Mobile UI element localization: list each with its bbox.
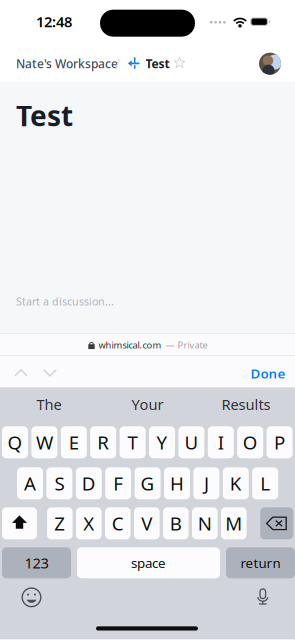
staticText: C: [112, 511, 124, 536]
button[interactable]: A: [17, 467, 43, 499]
staticText: Your: [131, 395, 163, 414]
staticText: U: [184, 430, 198, 455]
button[interactable]: return: [226, 547, 295, 578]
staticText: Nate's Workspace: [16, 56, 118, 72]
button[interactable]: Previous field: [8, 361, 34, 385]
staticText: H: [170, 471, 184, 496]
staticText: Private: [177, 339, 207, 351]
button[interactable]: Shift: [2, 507, 37, 539]
staticText: Results: [221, 395, 270, 414]
button[interactable]: E: [61, 426, 87, 458]
button[interactable]: H: [164, 467, 190, 499]
staticText: J: [204, 471, 209, 496]
staticText: Done: [250, 364, 285, 382]
button[interactable]: D: [76, 467, 102, 499]
staticText: A: [24, 471, 36, 496]
staticText: 12:48: [36, 12, 72, 31]
staticText: Y: [156, 430, 167, 455]
staticText: W: [36, 430, 53, 455]
staticText: M: [225, 511, 242, 536]
staticText: K: [230, 471, 242, 496]
button[interactable]: Your: [98, 387, 197, 421]
staticText: G: [141, 471, 155, 496]
staticText: S: [54, 471, 64, 496]
button[interactable]: P: [267, 426, 293, 458]
staticText: O: [243, 430, 258, 455]
button[interactable]: Results: [197, 387, 295, 421]
button[interactable]: Emoji: [18, 584, 44, 610]
staticText: 123: [24, 553, 48, 573]
staticText: V: [141, 511, 152, 536]
button[interactable]: X: [76, 507, 102, 539]
button[interactable]: Account: [259, 53, 281, 75]
staticText: Z: [54, 511, 65, 536]
button[interactable]: V: [134, 507, 160, 539]
staticText: T: [128, 430, 138, 455]
staticText: P: [274, 430, 285, 455]
button[interactable]: Test: [145, 51, 175, 77]
staticText: E: [69, 430, 79, 455]
staticText: N: [198, 511, 212, 536]
staticText: /: [114, 54, 119, 73]
staticText: space: [131, 554, 166, 572]
staticText: X: [83, 511, 94, 536]
button[interactable]: Nate's Workspace: [16, 51, 124, 77]
button[interactable]: L: [252, 467, 278, 499]
button[interactable]: Dictate: [250, 584, 276, 610]
staticText: B: [170, 511, 182, 536]
button[interactable]: J: [193, 467, 219, 499]
button[interactable]: U: [178, 426, 204, 458]
staticText: Q: [7, 430, 22, 455]
staticText: L: [260, 471, 270, 496]
button[interactable]: 123: [2, 547, 71, 578]
button[interactable]: Y: [149, 426, 175, 458]
staticText: whimsical.com: [98, 339, 161, 351]
button[interactable]: Next field: [37, 361, 63, 385]
button[interactable]: The: [0, 387, 98, 421]
button[interactable]: F: [105, 467, 131, 499]
button[interactable]: space: [77, 547, 220, 578]
button[interactable]: O: [237, 426, 263, 458]
button[interactable]: Delete: [260, 507, 293, 539]
staticText: Test: [16, 97, 73, 134]
button[interactable]: W: [31, 426, 57, 458]
staticText: Test: [145, 56, 169, 72]
button[interactable]: B: [163, 507, 189, 539]
button[interactable]: G: [135, 467, 161, 499]
button[interactable]: N: [192, 507, 218, 539]
button[interactable]: M: [221, 507, 247, 539]
button[interactable]: C: [105, 507, 131, 539]
staticText: I: [218, 430, 224, 455]
button[interactable]: Done: [246, 361, 290, 385]
staticText: F: [113, 471, 123, 496]
button[interactable]: T: [120, 426, 146, 458]
staticText: R: [97, 430, 109, 455]
button[interactable]: I: [208, 426, 234, 458]
button[interactable]: Q: [2, 426, 28, 458]
button[interactable]: R: [90, 426, 116, 458]
button[interactable]: Z: [47, 507, 73, 539]
button[interactable]: S: [46, 467, 72, 499]
staticText: D: [82, 471, 96, 496]
button[interactable]: K: [223, 467, 249, 499]
button[interactable]: Favorite: [172, 56, 186, 70]
staticText: —: [165, 339, 174, 351]
staticText: return: [240, 554, 280, 572]
staticText: Start a discussion...: [16, 294, 114, 308]
staticText: The: [36, 395, 61, 414]
